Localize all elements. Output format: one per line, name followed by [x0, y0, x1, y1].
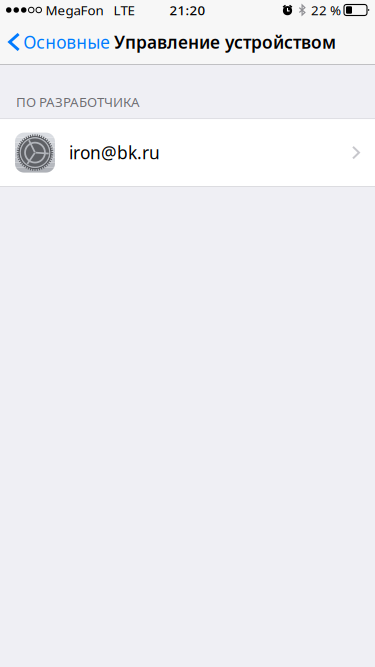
- staticText: MegaFon: [45, 1, 103, 19]
- staticText: iron@bk.ru: [69, 141, 160, 164]
- button[interactable]: iron@bk.ru: [0, 119, 375, 186]
- staticText: ПО РАЗРАБОТЧИКА: [16, 93, 140, 111]
- staticText: Основные: [23, 30, 110, 53]
- staticText: LTE: [113, 1, 134, 19]
- staticText: 22 %: [311, 1, 341, 19]
- staticText: Управление устройством: [114, 30, 336, 53]
- staticText: 21:20: [169, 1, 205, 19]
- button[interactable]: Основные: [0, 20, 116, 64]
